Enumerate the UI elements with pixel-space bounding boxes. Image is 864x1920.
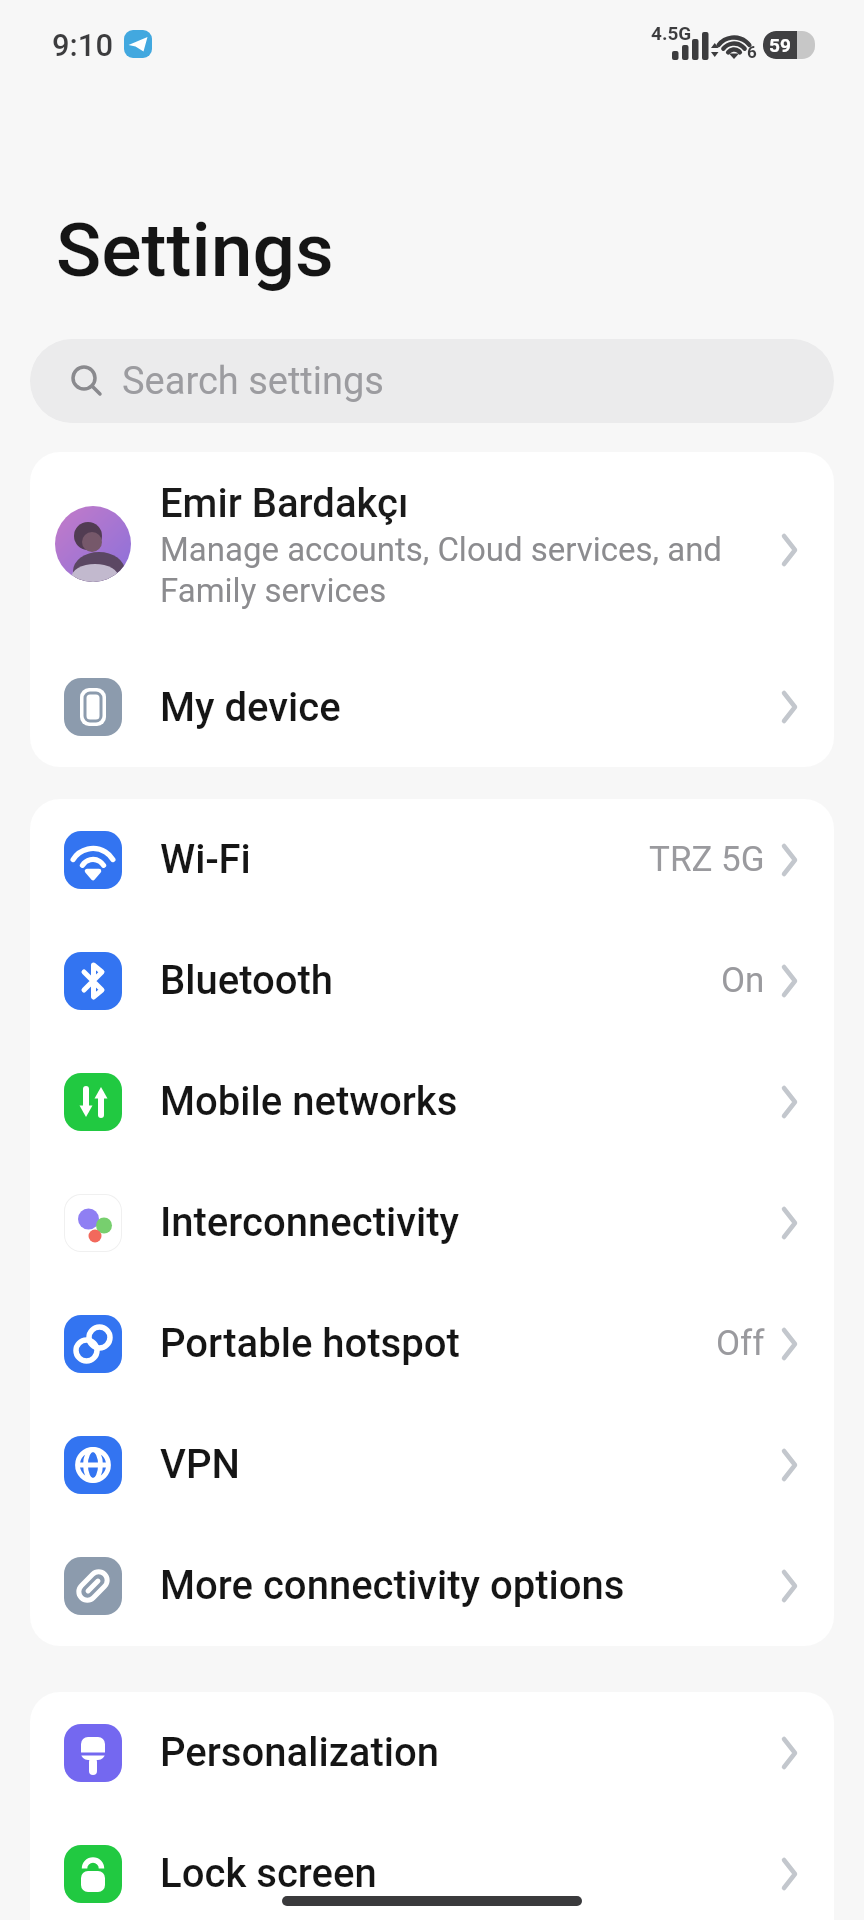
staticText: Personalization (160, 1729, 440, 1776)
button[interactable]: Lock screen (30, 1813, 834, 1920)
button[interactable]: Personalization (30, 1692, 834, 1813)
staticText: 9:10 (52, 27, 114, 63)
button[interactable]: Emir Bardakçı (30, 452, 834, 647)
staticText: Manage accounts, Cloud services, and Fam… (160, 530, 722, 610)
staticText: Interconnectivity (160, 1199, 460, 1246)
staticText: Wi-Fi (160, 836, 251, 883)
staticText: Off (716, 1323, 765, 1364)
button[interactable]: Bluetooth (30, 920, 834, 1041)
staticText: My device (160, 684, 341, 731)
staticText: More connectivity options (160, 1562, 625, 1609)
button[interactable]: Wi-Fi (30, 799, 834, 920)
staticText: 59 (769, 34, 791, 56)
staticText: Settings (56, 206, 334, 294)
staticText: 4.5G (651, 22, 692, 44)
button[interactable]: My device (30, 647, 834, 767)
button[interactable]: More connectivity options (30, 1525, 834, 1646)
staticText: Bluetooth (160, 957, 333, 1004)
button[interactable]: Search settings (30, 339, 834, 423)
button[interactable]: VPN (30, 1404, 834, 1525)
staticText: Mobile networks (160, 1078, 458, 1125)
staticText: Lock screen (160, 1850, 377, 1897)
staticText: On (721, 960, 765, 1001)
staticText: Search settings (122, 359, 384, 404)
staticText: Portable hotspot (160, 1320, 460, 1367)
staticText: VPN (160, 1441, 240, 1488)
button[interactable]: Mobile networks (30, 1041, 834, 1162)
button[interactable]: Interconnectivity (30, 1162, 834, 1283)
staticText: TRZ 5G (649, 839, 765, 880)
button[interactable]: Portable hotspot (30, 1283, 834, 1404)
staticText: 6 (747, 42, 757, 62)
staticText: Emir Bardakçı (160, 480, 409, 527)
